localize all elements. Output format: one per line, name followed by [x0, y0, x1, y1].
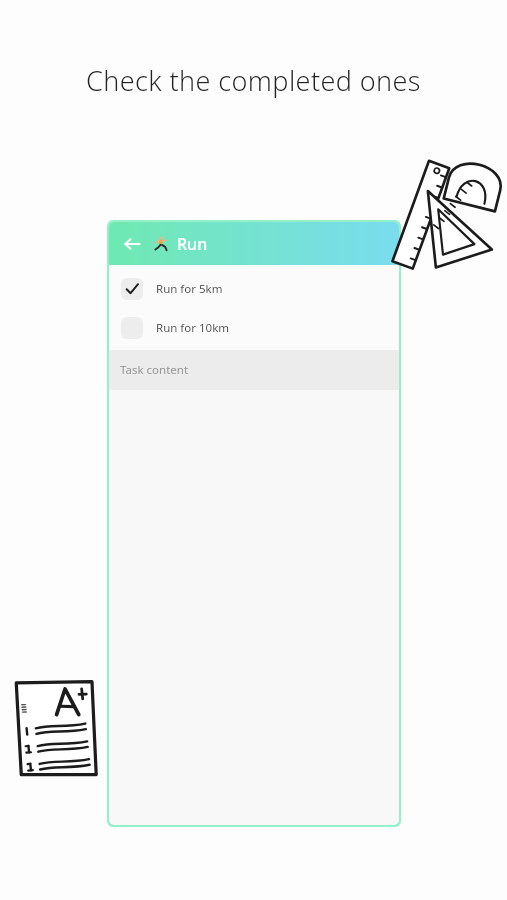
staticText: Task content: [120, 362, 189, 378]
button[interactable]: Run for 5km: [109, 276, 399, 302]
staticText: Run: [177, 233, 208, 255]
staticText: Check the completed ones: [0, 62, 507, 99]
button[interactable]: Task content: [109, 350, 399, 390]
button[interactable]: Run for 10km: [109, 315, 399, 341]
button[interactable]: Back: [117, 229, 147, 259]
staticText: Run for 10km: [156, 320, 230, 336]
staticText: Run for 5km: [156, 281, 223, 297]
